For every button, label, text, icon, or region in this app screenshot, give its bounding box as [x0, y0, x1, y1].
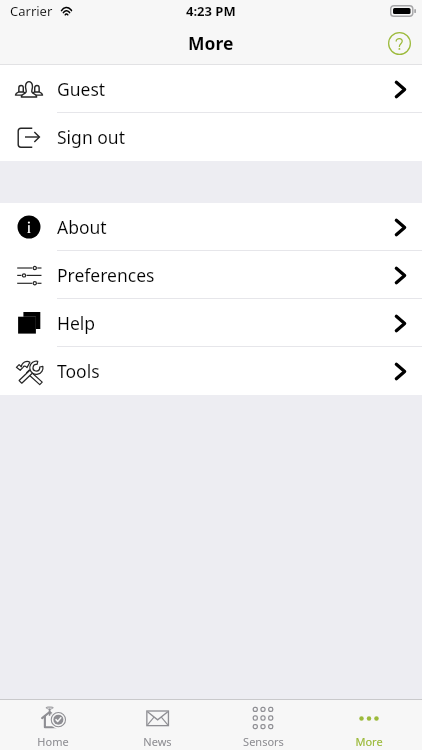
button[interactable]: Home	[0, 700, 105, 750]
staticText: About	[57, 215, 107, 239]
staticText: Sensors	[243, 734, 284, 749]
staticText: Preferences	[57, 263, 155, 287]
staticText: Home	[37, 734, 69, 749]
staticText: Tools	[57, 359, 100, 383]
button[interactable]: Tools	[0, 347, 422, 395]
staticText: More	[188, 31, 234, 55]
button[interactable]: Preferences	[0, 251, 422, 299]
button[interactable]: Help	[0, 299, 422, 347]
staticText: Guest	[57, 77, 106, 101]
button[interactable]: More	[316, 700, 422, 750]
staticText: News	[143, 734, 172, 749]
button[interactable]: About	[0, 203, 422, 251]
staticText: Carrier	[10, 2, 53, 20]
button[interactable]: Sign out	[0, 113, 422, 161]
button[interactable]: Sensors	[210, 700, 316, 750]
button[interactable]: News	[105, 700, 210, 750]
staticText: More	[355, 734, 383, 749]
button[interactable]: Guest	[0, 65, 422, 113]
staticText: Sign out	[57, 125, 125, 149]
staticText: 4:23 PM	[186, 2, 236, 20]
staticText: Help	[57, 311, 96, 335]
button[interactable]: Help	[388, 32, 411, 55]
